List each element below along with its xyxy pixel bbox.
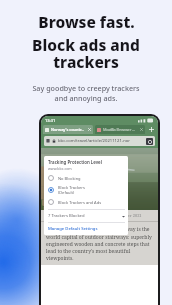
staticText: By Mike Machiavean <box>57 213 99 218</box>
button[interactable]: bbc.com/travel/article/20211121-nor <box>44 136 155 146</box>
staticText: Say goodbye to creepy trackers and annoy… <box>32 83 140 103</box>
staticText: www.bbc.com <box>48 166 72 171</box>
staticText: Block Trackers (Default) <box>58 185 85 195</box>
button[interactable]: Block Trackers and Ads <box>48 199 125 205</box>
staticText: bbc.com/travel/article/20211121-nor <box>58 138 130 144</box>
button[interactable]: No Blocking <box>48 175 125 181</box>
staticText: Mozilla Browser ... <box>103 127 136 132</box>
button[interactable]: New tab <box>147 125 156 134</box>
staticText: Many people don't know that Norway is th… <box>46 226 153 261</box>
staticText: Block ads and trackers <box>0 34 172 73</box>
staticText: Block Trackers and Ads <box>58 200 102 205</box>
staticText: 13:31 <box>45 118 56 123</box>
staticText: Manage Default Settings <box>48 226 98 232</box>
staticText: 22nd November 2021 <box>101 213 142 218</box>
staticText: Norway's countr... <box>51 127 85 132</box>
staticText: Tracking Protection Level <box>48 159 102 165</box>
button[interactable]: Norway's countr... <box>43 125 93 134</box>
staticText: Browse fast. <box>38 11 135 32</box>
button[interactable]: Mozilla Browser ... <box>95 125 145 134</box>
button[interactable]: 7 Trackers Blocked <box>48 213 125 219</box>
staticText: 7 Trackers Blocked <box>48 213 85 219</box>
button[interactable]: Manage Default Settings <box>48 226 98 232</box>
button[interactable]: Block Trackers (Default) <box>48 185 125 195</box>
button[interactable]: Reader mode <box>146 138 153 145</box>
staticText: No Blocking <box>58 176 81 181</box>
